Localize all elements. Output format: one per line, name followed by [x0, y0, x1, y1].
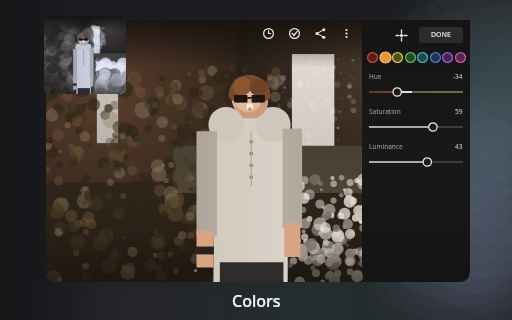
staticText: -34: [453, 72, 463, 81]
button[interactable]: Color 2: [391, 51, 403, 63]
button[interactable]: Compare original: [286, 25, 302, 41]
button[interactable]: Share: [312, 25, 328, 41]
button[interactable]: DONE: [419, 27, 463, 43]
button[interactable]: Saturation: [362, 107, 470, 133]
button[interactable]: More options: [338, 25, 354, 41]
button[interactable]: Luminance: [362, 142, 470, 168]
staticText: Colors: [232, 290, 281, 312]
staticText: Luminance: [369, 142, 403, 151]
button[interactable]: Color 3: [404, 51, 416, 63]
staticText: Saturation: [369, 107, 401, 116]
button[interactable]: History: [260, 25, 276, 41]
button[interactable]: [44, 16, 126, 94]
staticText: DONE: [431, 30, 451, 40]
button[interactable]: Hue: [362, 72, 470, 98]
staticText: 43: [455, 142, 463, 151]
button[interactable]: Color 1: [379, 51, 391, 63]
button[interactable]: Color 4: [416, 51, 428, 63]
button[interactable]: Color 5: [429, 51, 441, 63]
button[interactable]: Add color point: [392, 26, 410, 44]
staticText: 59: [455, 107, 463, 116]
button[interactable]: Color 7: [454, 51, 466, 63]
staticText: Hue: [369, 72, 382, 81]
button[interactable]: Color 0: [366, 51, 378, 63]
button[interactable]: Color 6: [441, 51, 453, 63]
